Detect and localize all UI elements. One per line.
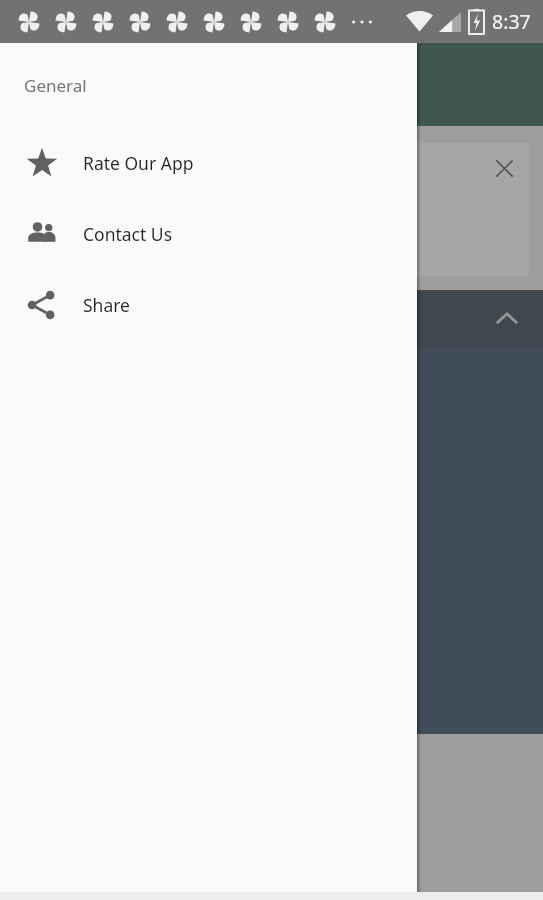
button[interactable]: Close (483, 147, 525, 189)
staticText: Rate Our App (83, 151, 194, 175)
other: Collapse (489, 301, 525, 337)
staticText: Share (83, 293, 130, 317)
button[interactable]: Share (0, 269, 417, 340)
staticText: 8:37 (492, 8, 531, 35)
staticText: General (24, 74, 87, 97)
staticText: Match (32, 307, 82, 330)
button[interactable]: Contact Us (0, 198, 417, 269)
button[interactable]: Match (14, 290, 543, 347)
button[interactable]: Rate Our App (0, 127, 417, 198)
staticText: Contact Us (83, 222, 173, 246)
